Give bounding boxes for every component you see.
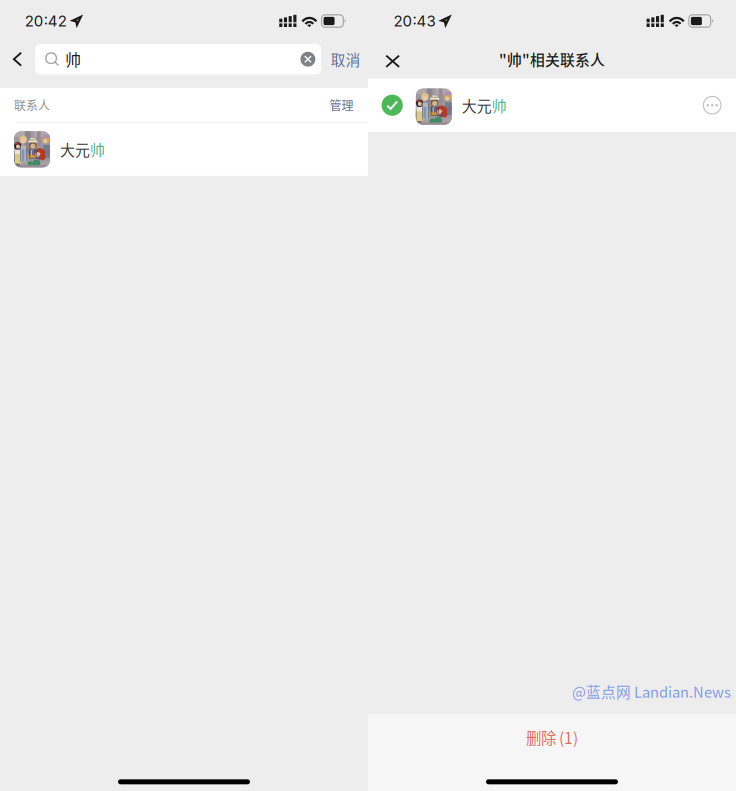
staticText: "帅"相关联系人 xyxy=(499,48,605,70)
staticText: 大元 xyxy=(60,138,90,160)
staticText: 帅 xyxy=(65,48,81,71)
staticText: @蓝点网 Landian.News xyxy=(572,681,731,702)
staticText: 20:43 xyxy=(393,12,435,30)
staticText: 取消 xyxy=(331,49,361,70)
button[interactable]: Clear search text xyxy=(295,44,321,74)
staticText: 大元 xyxy=(462,94,492,116)
button[interactable]: 取消 xyxy=(321,44,369,74)
button[interactable]: 大元 xyxy=(368,78,736,132)
button[interactable]: Close xyxy=(368,44,417,78)
staticText: 管理 xyxy=(329,96,353,114)
staticText: 删除 (1) xyxy=(526,726,578,748)
staticText: 帅 xyxy=(492,94,507,116)
button[interactable]: 管理 xyxy=(329,96,353,114)
button[interactable]: 大元 xyxy=(0,123,368,176)
button[interactable]: 删除 (1) xyxy=(368,714,736,791)
button[interactable]: Back xyxy=(0,44,35,74)
staticText: 联系人 xyxy=(14,96,50,114)
staticText: 20:42 xyxy=(25,12,67,30)
staticText: 帅 xyxy=(90,138,105,160)
